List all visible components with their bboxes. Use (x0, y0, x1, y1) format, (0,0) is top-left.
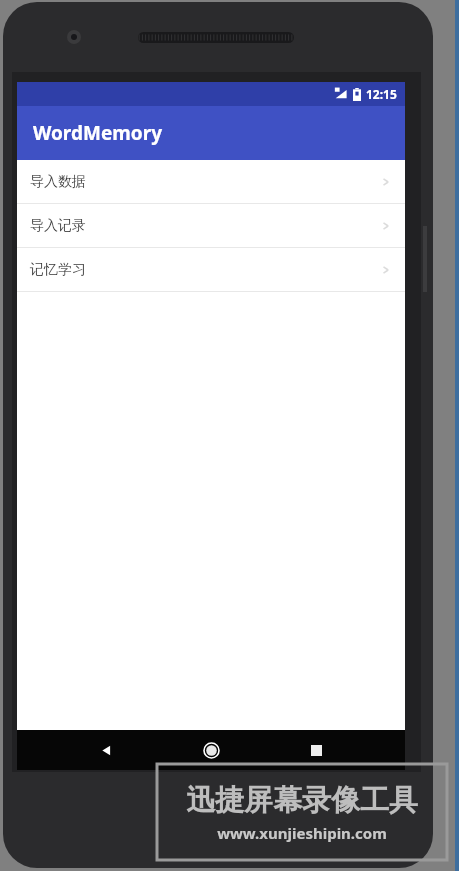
staticText: 迅捷屏幕录像工具 (186, 782, 418, 819)
button[interactable]: 导入记录 (17, 204, 405, 247)
staticText: WordMemory (33, 120, 162, 146)
staticText: 导入数据 (30, 173, 86, 191)
staticText: 导入记录 (30, 217, 86, 235)
button[interactable]: Home (198, 737, 224, 763)
staticText: 记忆学习 (30, 261, 86, 279)
button[interactable]: 导入数据 (17, 160, 405, 203)
staticText: www.xunjieshipin.com (217, 823, 387, 843)
staticText: 12:15 (366, 86, 397, 102)
button[interactable]: 记忆学习 (17, 248, 405, 291)
button[interactable]: Recents (303, 737, 329, 763)
button[interactable]: Back (93, 737, 119, 763)
